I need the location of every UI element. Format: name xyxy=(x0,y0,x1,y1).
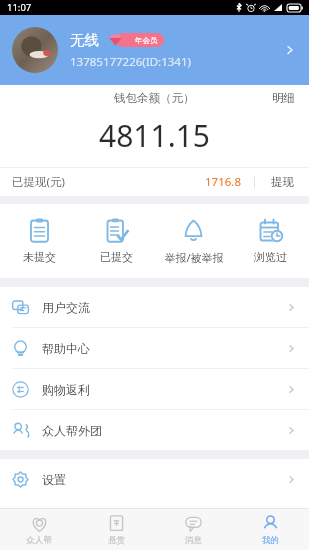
staticText: 已提交 xyxy=(100,250,133,264)
button[interactable]: 帮助中心 xyxy=(0,328,309,368)
button[interactable]: 无线 xyxy=(0,15,309,85)
staticText: 设置 xyxy=(42,472,286,487)
button[interactable]: 设置 xyxy=(0,459,309,499)
staticText: 13785177226(ID:1341) xyxy=(70,54,191,70)
button[interactable]: 悬赏 xyxy=(78,509,155,550)
staticText: 未提交 xyxy=(23,250,56,264)
staticText: 1716.8 xyxy=(205,174,241,190)
staticText: 购物返利 xyxy=(42,382,286,397)
staticText: 举报/被举报 xyxy=(164,250,224,265)
staticText: 悬赏 xyxy=(108,535,125,546)
staticText: 4811.15 xyxy=(99,115,210,156)
button[interactable]: 众人帮 xyxy=(0,509,78,550)
staticText: 无线 xyxy=(70,31,99,49)
button[interactable]: 浏览过 xyxy=(232,204,309,278)
button[interactable]: 提现 xyxy=(268,171,297,193)
staticText: 浏览过 xyxy=(254,250,287,264)
staticText: 众人帮 xyxy=(26,535,52,546)
staticText: 我的 xyxy=(262,535,279,546)
staticText: 年会员 xyxy=(135,36,158,45)
staticText: 11:07 xyxy=(7,1,32,14)
staticText: 众人帮外团 xyxy=(42,423,286,438)
staticText: 已提现(元) xyxy=(12,174,205,190)
button[interactable]: 购物返利 xyxy=(0,369,309,409)
staticText: 明细 xyxy=(272,91,295,105)
other: Profile detail xyxy=(283,43,297,57)
button[interactable]: 我的 xyxy=(232,509,309,550)
button[interactable]: 未提交 xyxy=(0,204,78,278)
button[interactable]: 举报/被举报 xyxy=(155,204,232,278)
staticText: 提现 xyxy=(271,175,294,189)
button[interactable]: 已提交 xyxy=(78,204,155,278)
button[interactable]: 消息 xyxy=(155,509,232,550)
staticText: 消息 xyxy=(185,535,202,546)
button[interactable]: 用户交流 xyxy=(0,287,309,327)
staticText: 钱包余额（元） xyxy=(114,91,195,105)
button[interactable]: 众人帮外团 xyxy=(0,410,309,450)
staticText: 帮助中心 xyxy=(42,341,286,356)
button[interactable]: 明细 xyxy=(258,87,309,109)
staticText: 用户交流 xyxy=(42,300,286,315)
